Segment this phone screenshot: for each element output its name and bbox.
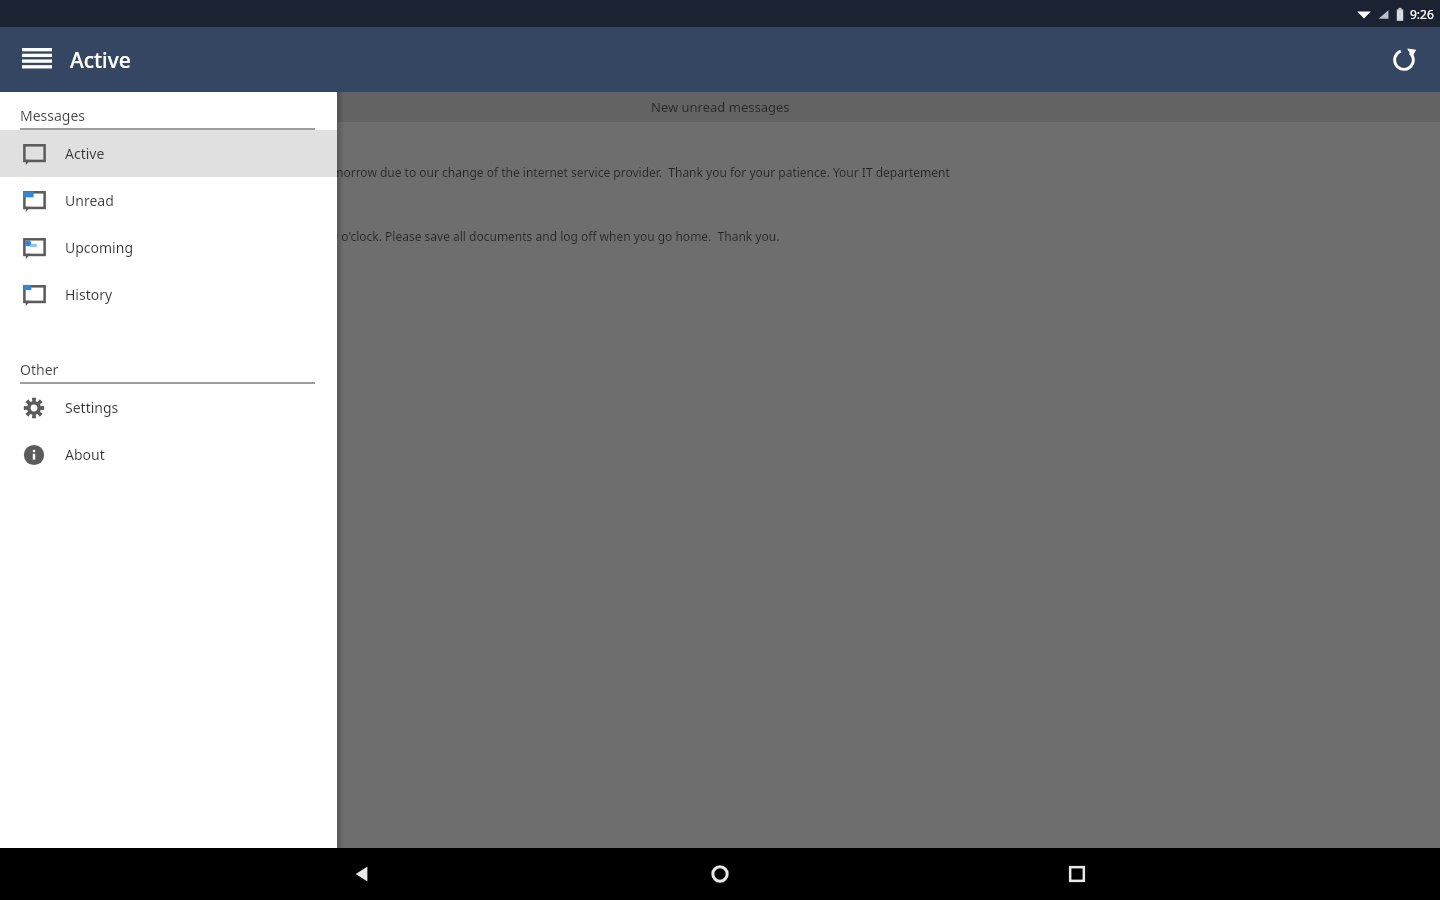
staticText: Unread (65, 191, 114, 210)
staticText: 9:26 (1410, 6, 1434, 22)
staticText: New unread messages (651, 98, 790, 116)
button[interactable]: Home (696, 850, 744, 898)
button[interactable]: Active (0, 130, 337, 177)
button[interactable]: Settings (0, 384, 337, 431)
staticText: History (65, 285, 113, 304)
staticText: Dear colleagues, the internet will not b… (40, 164, 950, 180)
button[interactable]: Recent apps (1053, 850, 1101, 898)
staticText: Active (70, 46, 131, 75)
button[interactable]: About (0, 431, 337, 478)
button[interactable]: Open navigation drawer (12, 35, 62, 85)
staticText: Messages (20, 106, 86, 125)
button[interactable]: Unread (0, 177, 337, 224)
button[interactable]: Back (339, 850, 387, 898)
staticText: Upcoming (65, 238, 133, 257)
staticText: Dear colleagues, a power outage will tak… (40, 228, 780, 244)
button[interactable]: History (0, 271, 337, 318)
button[interactable]: Upcoming (0, 224, 337, 271)
button[interactable]: Refresh (1380, 36, 1428, 84)
staticText: Active (65, 144, 105, 163)
staticText: Other (20, 360, 59, 379)
staticText: Settings (65, 398, 119, 417)
staticText: About (65, 445, 105, 464)
